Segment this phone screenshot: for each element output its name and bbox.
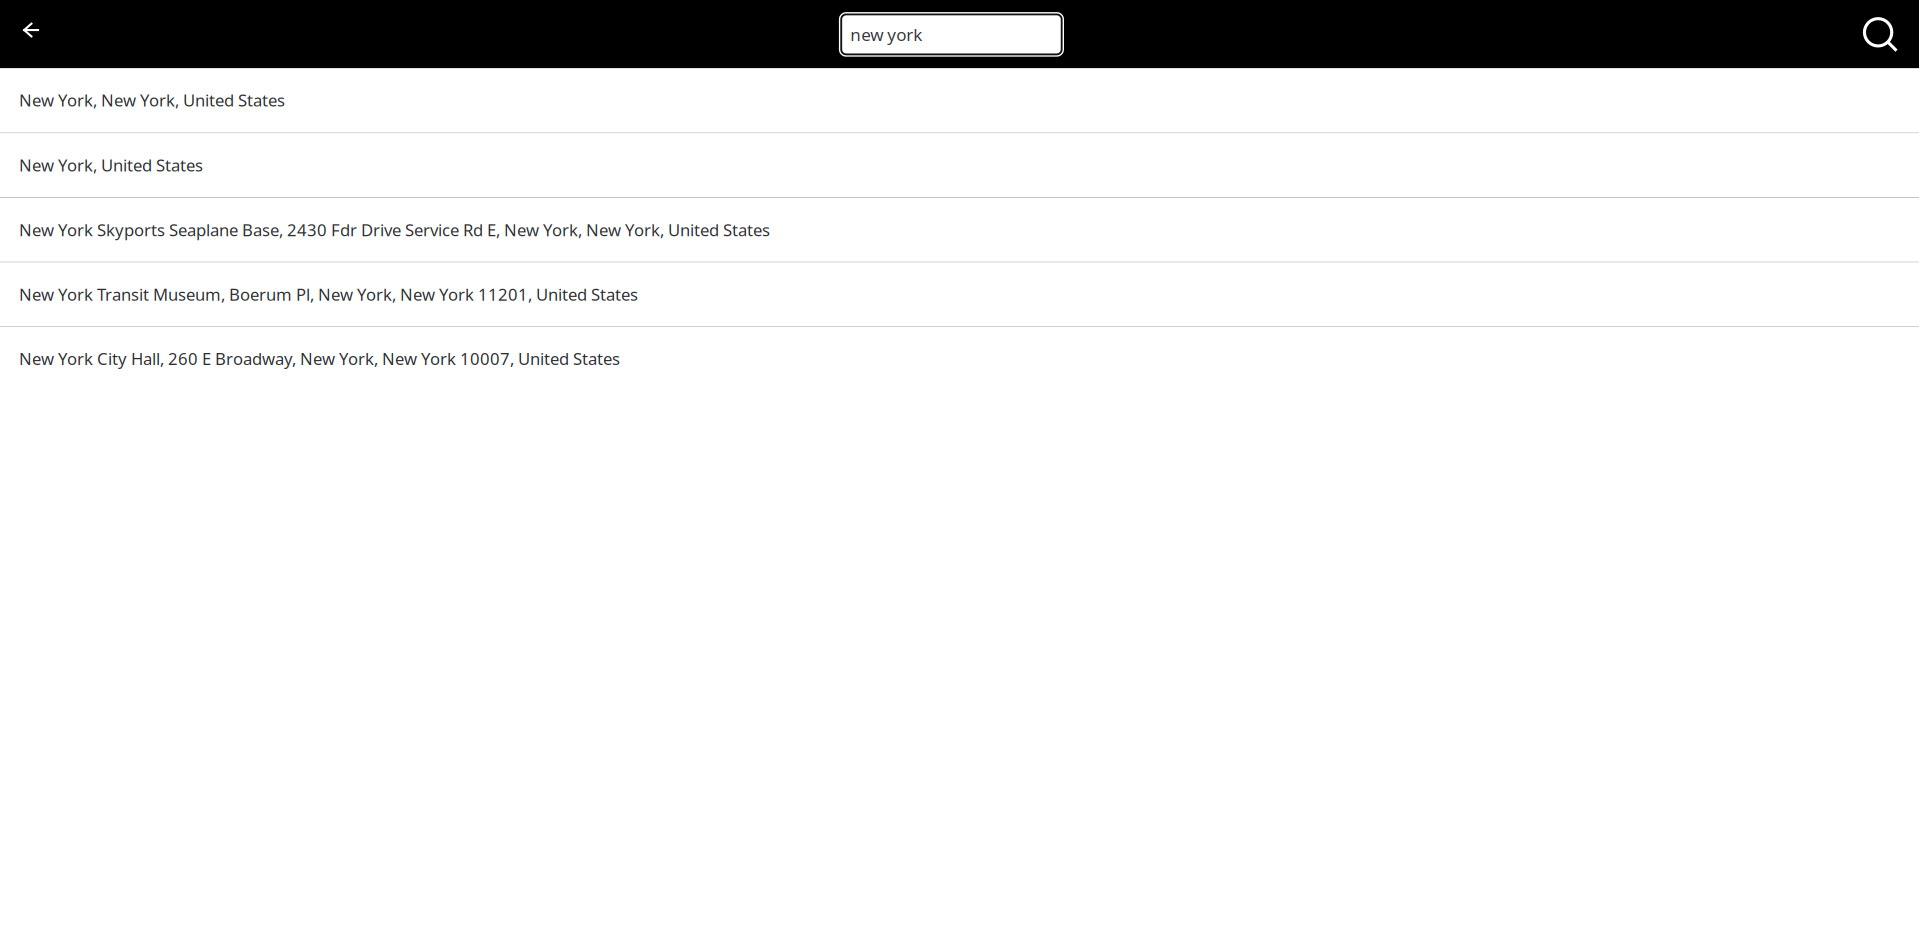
button[interactable]: New York, United States — [0, 133, 1919, 198]
staticText: New York Transit Museum, Boerum Pl, New … — [19, 283, 638, 306]
button[interactable]: Search — [1859, 13, 1907, 61]
button[interactable]: new york — [840, 13, 1063, 56]
staticText: new york — [850, 23, 922, 46]
button[interactable]: New York City Hall, 260 E Broadway, New … — [0, 327, 1919, 392]
button[interactable]: Back — [12, 12, 52, 48]
staticText: New York City Hall, 260 E Broadway, New … — [19, 347, 620, 370]
button[interactable]: New York Skyports Seaplane Base, 2430 Fd… — [0, 198, 1919, 263]
staticText: New York, United States — [19, 154, 203, 176]
button[interactable]: New York, New York, United States — [0, 68, 1919, 133]
staticText: New York Skyports Seaplane Base, 2430 Fd… — [19, 218, 770, 241]
button[interactable]: New York Transit Museum, Boerum Pl, New … — [0, 263, 1919, 327]
staticText: New York, New York, United States — [19, 89, 285, 111]
